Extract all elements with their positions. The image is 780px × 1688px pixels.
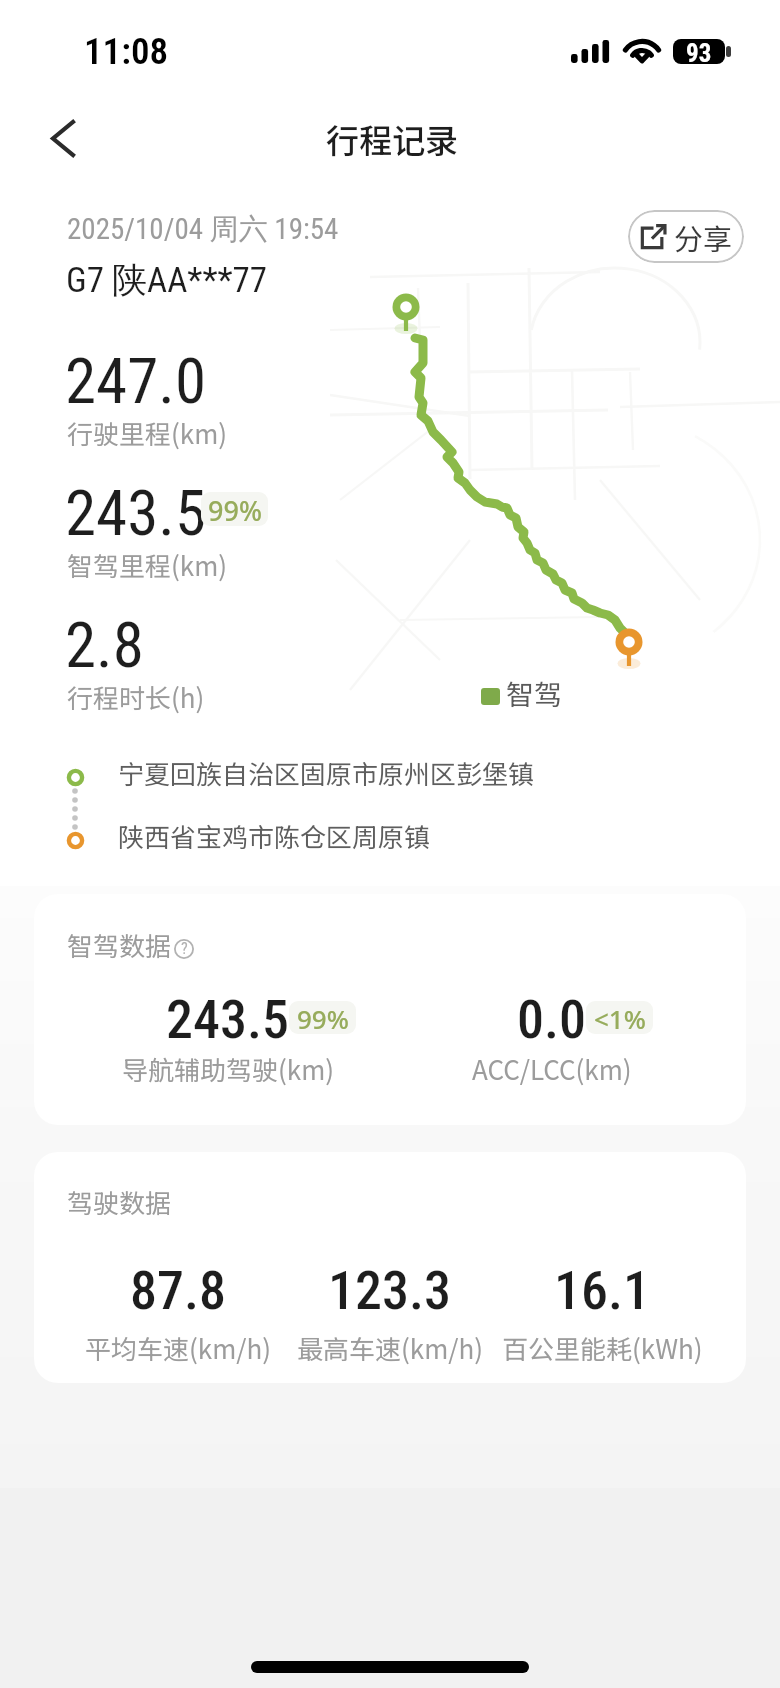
staticText: 2025/10/04 周六 19:54	[67, 211, 339, 248]
staticText: ACC/LCC(km)	[472, 1050, 632, 1088]
staticText: 2.8	[65, 609, 144, 683]
staticText: 宁夏回族自治区固原市原州区彭堡镇	[118, 754, 535, 792]
staticText: 驾驶数据	[67, 1183, 172, 1221]
staticText: 智驾里程(km)	[67, 546, 228, 584]
button[interactable]: 驾驶数据	[34, 1152, 746, 1383]
staticText: 导航辅助驾驶(km)	[122, 1050, 335, 1088]
staticText: 行程记录	[326, 115, 458, 163]
staticText: 行驶里程(km)	[67, 414, 228, 452]
button[interactable]: 分享	[628, 210, 744, 263]
staticText: 243.5	[65, 477, 207, 551]
staticText: 99%	[297, 1001, 349, 1034]
staticText: 百公里能耗(kWh)	[502, 1329, 703, 1367]
staticText: 行程时长(h)	[67, 678, 205, 716]
staticText: 分享	[674, 216, 733, 258]
staticText: 16.1	[554, 1259, 651, 1322]
staticText: ?	[181, 939, 188, 958]
staticText: 247.0	[65, 345, 207, 419]
staticText: <1%	[594, 1001, 646, 1034]
staticText: 最高车速(km/h)	[297, 1329, 483, 1367]
staticText: 93	[686, 39, 712, 64]
staticText: 智驾数据	[67, 926, 172, 964]
staticText: 智驾	[506, 673, 563, 714]
button[interactable]: Back	[34, 109, 92, 167]
staticText: 陕西省宝鸡市陈仓区周原镇	[118, 817, 431, 855]
staticText: G7 陕AA***77	[66, 258, 268, 302]
staticText: 87.8	[130, 1259, 227, 1322]
staticText: 243.5	[166, 988, 290, 1051]
staticText: 0.0	[517, 988, 587, 1051]
button[interactable]: 智驾数据	[34, 894, 746, 1125]
staticText: 平均车速(km/h)	[85, 1329, 271, 1367]
staticText: 11:08	[84, 30, 169, 73]
button[interactable]: Help about assisted driving data	[174, 939, 194, 959]
staticText: 99%	[208, 492, 262, 526]
staticText: 123.3	[328, 1259, 452, 1322]
